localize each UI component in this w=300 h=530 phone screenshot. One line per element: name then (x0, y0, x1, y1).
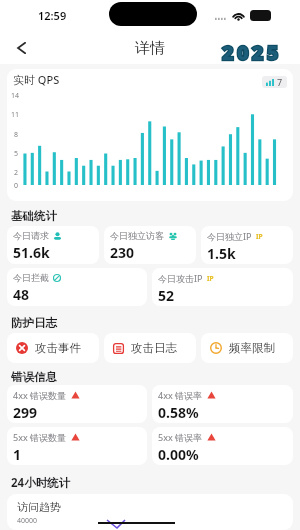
staticText: 实时 QPS (13, 72, 60, 87)
staticText: 4xx 错误率 (158, 389, 203, 401)
staticText: 12:59 (38, 8, 67, 23)
button[interactable]: 攻击日志 (104, 333, 196, 363)
staticText: 基础统计 (11, 209, 57, 223)
button[interactable]: 今日独立访客 (104, 226, 196, 264)
staticText: 11 (11, 110, 20, 120)
staticText: 今日拦截 (13, 272, 49, 283)
button[interactable]: 7 (262, 76, 287, 88)
staticText: 5xx 错误率 (158, 431, 203, 443)
staticText: 0 (14, 181, 19, 191)
staticText: 2025 (222, 39, 282, 66)
staticText: 今日独立IP (207, 230, 252, 242)
button[interactable]: 4xx 错误率 (152, 385, 293, 423)
staticText: 4xx 错误数量 (13, 389, 67, 401)
button[interactable]: 频率限制 (201, 333, 293, 363)
staticText: 今日独立访客 (110, 230, 164, 241)
staticText: 14 (11, 91, 20, 101)
staticText: IP (256, 232, 263, 241)
staticText: 今日请求 (13, 230, 49, 241)
staticText: 40000 (17, 516, 38, 526)
staticText: 52 (158, 286, 175, 305)
staticText: 230 (110, 243, 135, 262)
staticText: 详情 (135, 39, 165, 58)
staticText: 299 (13, 403, 38, 422)
staticText: 8 (14, 130, 19, 140)
staticText: 防护日志 (11, 316, 57, 330)
staticText: 0.00% (158, 445, 199, 464)
staticText: 2 (14, 168, 19, 178)
staticText: 5xx 错误数量 (13, 431, 67, 443)
staticText: 5 (14, 149, 19, 159)
button[interactable]: 5xx 错误率 (152, 427, 293, 465)
staticText: 攻击事件 (35, 341, 81, 355)
button[interactable]: 5xx 错误数量 (7, 427, 147, 465)
staticText: 今日攻击IP (158, 272, 203, 284)
button[interactable]: 返回 (6, 32, 36, 62)
staticText: 24小时统计 (11, 475, 71, 491)
staticText: IP (207, 274, 214, 283)
button[interactable]: 攻击事件 (7, 333, 99, 363)
button[interactable]: 4xx 错误数量 (7, 385, 147, 423)
staticText: 48 (13, 285, 30, 304)
staticText: 7 (277, 76, 283, 88)
button[interactable]: 今日拦截 (7, 268, 147, 306)
staticText: 2025 (222, 39, 282, 66)
staticText: 攻击日志 (131, 341, 177, 355)
button[interactable]: 今日攻击IP (152, 268, 293, 306)
staticText: 0.58% (158, 403, 199, 422)
button[interactable]: 今日独立IP (201, 226, 293, 264)
button[interactable]: 今日请求 (7, 226, 99, 264)
staticText: 1.5k (207, 244, 236, 263)
staticText: 访问趋势 (17, 500, 61, 514)
staticText: 1 (13, 445, 22, 464)
staticText: 频率限制 (229, 341, 275, 355)
staticText: 错误信息 (11, 370, 57, 384)
staticText: 51.6k (13, 243, 50, 262)
